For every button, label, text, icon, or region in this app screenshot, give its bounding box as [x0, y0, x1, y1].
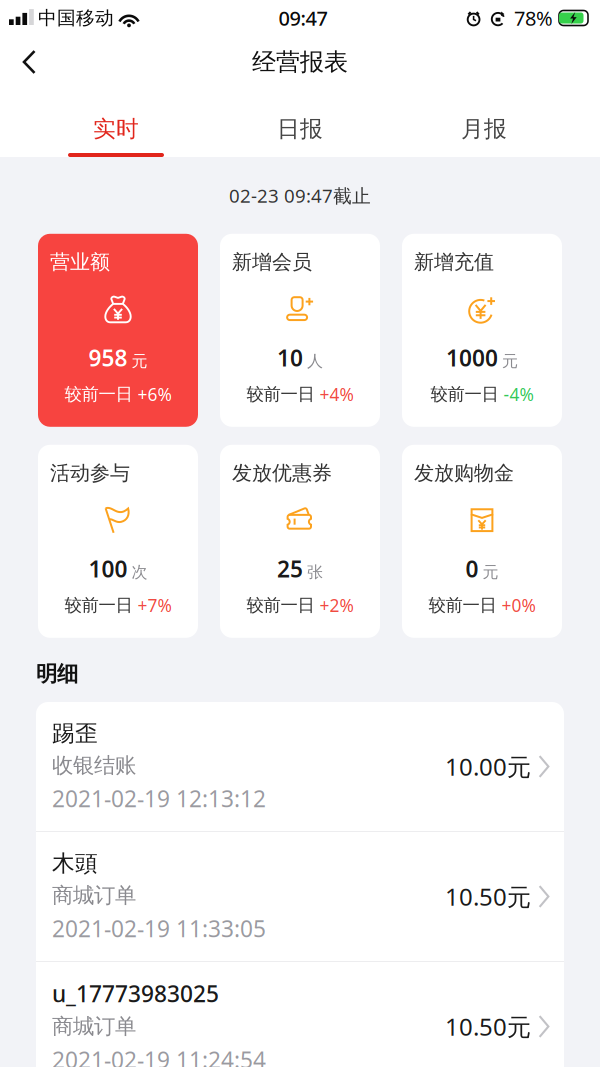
staticText: 新增充值 [414, 250, 494, 274]
staticText: 10 [277, 343, 303, 373]
staticText: 活动参与 [50, 461, 130, 485]
staticText: 元 [131, 351, 147, 371]
staticText: 元 [502, 351, 518, 371]
staticText: 02-23 09:47截止 [229, 183, 371, 208]
staticText: 较前一日 [64, 595, 137, 616]
staticText: 958 [88, 343, 127, 373]
staticText: 78% [514, 5, 553, 31]
staticText: 1000 [446, 343, 498, 373]
staticText: +4% [319, 383, 353, 406]
staticText: 2021-02-19 11:24:54 [52, 1045, 266, 1067]
staticText: 100 [88, 554, 127, 584]
button[interactable]: 新增充值 [402, 234, 562, 427]
staticText: 月报 [461, 115, 507, 143]
staticText: 10.50元 [445, 1011, 531, 1042]
staticText: 10.00元 [445, 751, 531, 782]
button[interactable]: 返回 [0, 36, 55, 87]
staticText: +7% [137, 594, 171, 617]
staticText: 元 [482, 562, 498, 582]
staticText: 较前一日 [246, 384, 319, 405]
staticText: 较前一日 [64, 384, 137, 405]
staticText: 日报 [277, 115, 323, 143]
staticText: 商城订单 [52, 1013, 136, 1040]
button[interactable]: 活动参与 [38, 445, 198, 638]
staticText: 较前一日 [246, 595, 319, 616]
staticText: 中国移动 [38, 6, 114, 29]
staticText: 09:47 [278, 5, 327, 31]
staticText: 10.50元 [445, 881, 531, 912]
staticText: 收银结账 [52, 752, 136, 778]
button[interactable]: u_17773983025 [36, 962, 564, 1067]
staticText: 木頭 [52, 849, 98, 877]
button[interactable]: 营业额 [38, 234, 198, 427]
button[interactable]: 木頭 [36, 832, 564, 961]
staticText: 营业额 [50, 250, 110, 274]
staticText: 2021-02-19 11:33:05 [52, 913, 266, 944]
staticText: 明细 [36, 661, 78, 687]
button[interactable]: 发放优惠券 [220, 445, 380, 638]
staticText: +6% [137, 383, 171, 406]
button[interactable]: 发放购物金 [402, 445, 562, 638]
staticText: 实时 [93, 115, 139, 143]
staticText: 2021-02-19 12:13:12 [52, 783, 266, 814]
staticText: 经营报表 [252, 47, 348, 77]
staticText: 0 [465, 554, 478, 584]
staticText: u_17773983025 [52, 978, 219, 1008]
staticText: +2% [319, 594, 353, 617]
staticText: 25 [277, 554, 303, 584]
staticText: 商城订单 [52, 882, 136, 908]
staticText: 新增会员 [232, 250, 312, 274]
staticText: 次 [131, 562, 147, 582]
staticText: 张 [307, 562, 323, 582]
staticText: 发放优惠券 [232, 461, 332, 485]
staticText: 较前一日 [428, 595, 501, 616]
button[interactable]: 月报 [392, 88, 576, 157]
button[interactable]: 踢歪 [36, 702, 564, 831]
staticText: -4% [503, 383, 533, 406]
staticText: +0% [501, 594, 535, 617]
staticText: 人 [307, 351, 323, 371]
staticText: 发放购物金 [414, 461, 514, 485]
staticText: 较前一日 [430, 384, 503, 405]
button[interactable]: 实时 [24, 88, 208, 157]
button[interactable]: 日报 [208, 88, 392, 157]
staticText: 踢歪 [52, 719, 98, 747]
button[interactable]: 新增会员 [220, 234, 380, 427]
